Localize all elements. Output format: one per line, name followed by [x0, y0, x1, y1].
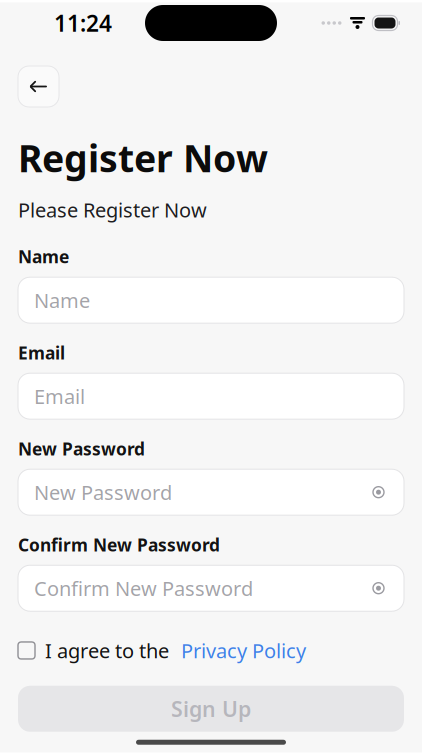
- button[interactable]: Name: [18, 277, 404, 323]
- staticText: Email: [18, 341, 65, 364]
- button[interactable]: New Password: [18, 469, 404, 515]
- button[interactable]: Back: [18, 66, 59, 107]
- staticText: New Password: [18, 437, 145, 460]
- button[interactable]: Agree to Privacy Policy: [18, 642, 35, 659]
- staticText: Register Now: [18, 133, 268, 183]
- button[interactable]: Email: [18, 373, 404, 419]
- staticText: Confirm New Password: [18, 533, 220, 556]
- staticText: Privacy Policy: [181, 637, 306, 664]
- staticText: New Password: [34, 479, 172, 505]
- staticText: Confirm New Password: [34, 575, 253, 601]
- staticText: I agree to the: [45, 637, 169, 664]
- button[interactable]: Confirm New Password: [18, 565, 404, 611]
- staticText: Email: [34, 383, 85, 409]
- staticText: Sign Up: [171, 695, 251, 723]
- button[interactable]: Sign Up: [18, 686, 404, 732]
- staticText: Please Register Now: [18, 197, 207, 223]
- staticText: 11:24: [54, 8, 112, 38]
- button[interactable]: Privacy Policy: [169, 637, 306, 664]
- staticText: Name: [34, 287, 90, 313]
- staticText: Name: [18, 245, 69, 268]
